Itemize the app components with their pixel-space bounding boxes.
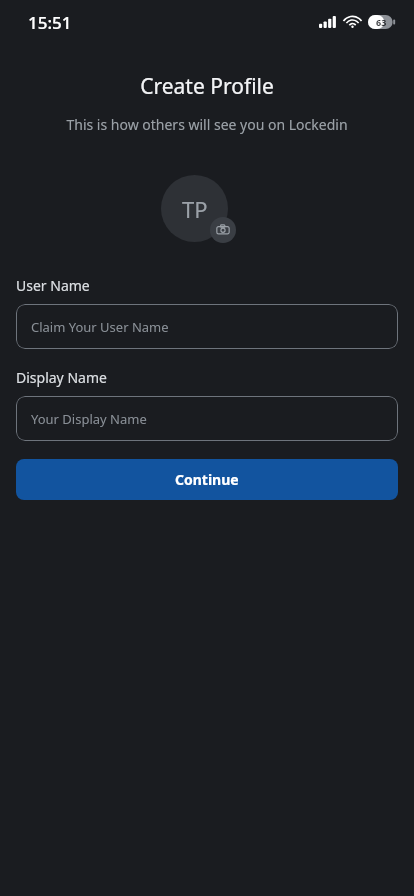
staticText: Continue <box>175 470 239 489</box>
button[interactable]: Change photo <box>210 217 236 243</box>
staticText: This is how others will see you on Locke… <box>0 115 414 134</box>
staticText: 63 <box>376 16 387 28</box>
staticText: TP <box>182 194 208 224</box>
button[interactable]: Claim Your User Name <box>16 304 398 349</box>
staticText: 15:51 <box>28 11 72 34</box>
staticText: Your Display Name <box>31 410 147 428</box>
button[interactable]: Profile photo <box>161 175 228 242</box>
staticText: Claim Your User Name <box>31 318 169 336</box>
button[interactable]: Your Display Name <box>16 396 398 441</box>
button[interactable]: Continue <box>16 459 398 500</box>
staticText: Create Profile <box>0 72 414 101</box>
staticText: User Name <box>16 276 90 295</box>
staticText: Display Name <box>16 368 107 387</box>
